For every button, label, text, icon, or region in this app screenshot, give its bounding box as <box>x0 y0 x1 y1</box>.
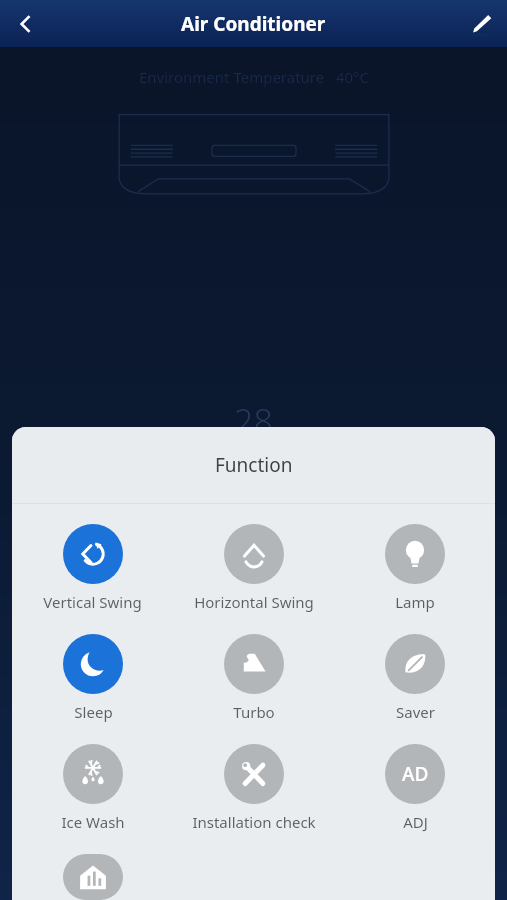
button[interactable]: Installation check <box>188 744 320 832</box>
staticText: Saver <box>396 702 435 722</box>
staticText: Turbo <box>233 702 275 722</box>
button[interactable]: Saver <box>381 634 449 722</box>
staticText: Air Conditioner <box>181 11 326 37</box>
button[interactable]: Vertical Swing <box>39 524 146 612</box>
staticText: Horizontal Swing <box>194 592 314 612</box>
staticText: Function <box>215 452 293 478</box>
button[interactable]: Back <box>0 0 52 47</box>
staticText: Sleep <box>74 702 113 722</box>
staticText: ADJ <box>403 812 428 832</box>
staticText: Vertical Swing <box>43 592 142 612</box>
staticText: Lamp <box>395 592 435 612</box>
button[interactable]: Report <box>59 854 127 900</box>
button[interactable]: Edit <box>455 0 507 47</box>
button[interactable]: Horizontal Swing <box>190 524 318 612</box>
staticText: Installation check <box>192 812 316 832</box>
button[interactable]: AD <box>381 744 449 832</box>
staticText: Environment Temperature 40°C <box>139 67 369 87</box>
staticText: 28 <box>234 398 273 444</box>
button[interactable]: Lamp <box>381 524 449 612</box>
button[interactable]: Ice Wash <box>57 744 129 832</box>
button[interactable]: Sleep <box>59 634 127 722</box>
staticText: AD <box>402 761 429 787</box>
button[interactable]: Turbo <box>220 634 288 722</box>
staticText: Ice Wash <box>61 812 125 832</box>
